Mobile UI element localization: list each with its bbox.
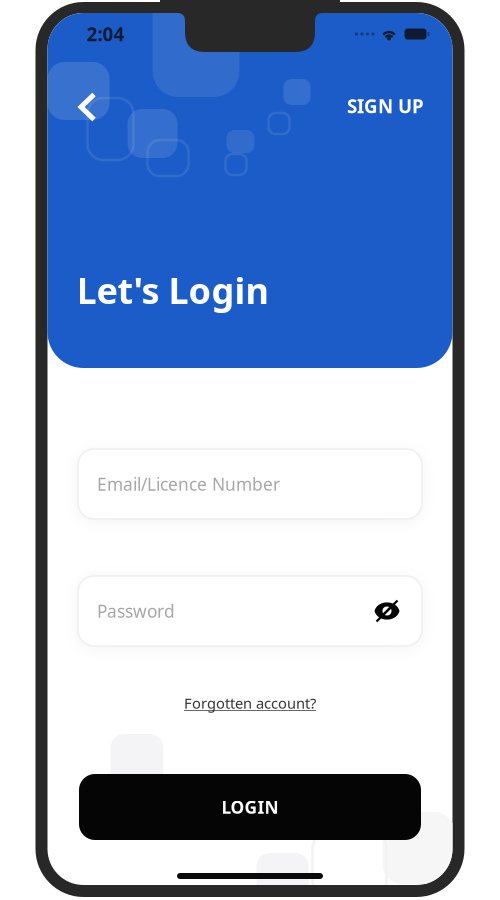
button[interactable]: Forgotten account? — [176, 685, 324, 721]
button[interactable]: LOGIN — [79, 774, 421, 840]
staticText: Email/Licence Number — [97, 472, 280, 495]
button[interactable]: Back — [64, 84, 110, 130]
button[interactable]: Show password — [367, 591, 407, 631]
staticText: SIGN UP — [347, 94, 424, 118]
staticText: LOGIN — [221, 795, 278, 818]
staticText: 2:04 — [86, 22, 124, 46]
staticText: Password — [97, 599, 175, 622]
button[interactable]: SIGN UP — [337, 82, 434, 130]
staticText: Let's Login — [76, 266, 268, 314]
staticText: Forgotten account? — [184, 693, 316, 713]
